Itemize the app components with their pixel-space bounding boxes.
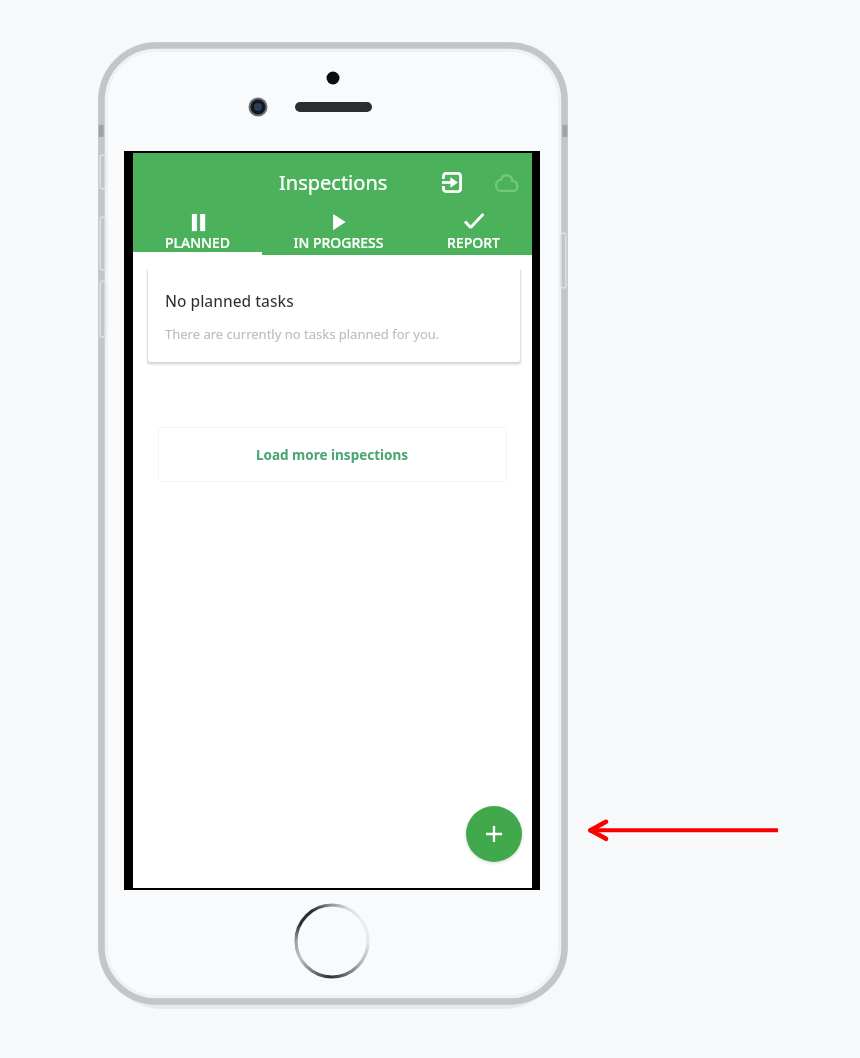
staticText: Load more inspections <box>256 446 409 464</box>
button[interactable]: IN PROGRESS <box>262 205 414 255</box>
button[interactable]: Add inspection <box>466 806 522 862</box>
button[interactable]: REPORT <box>414 205 532 255</box>
button[interactable]: Load more inspections <box>158 427 507 482</box>
staticText: REPORT <box>447 233 500 252</box>
staticText: PLANNED <box>165 233 230 252</box>
button[interactable]: No planned tasks <box>148 268 520 362</box>
staticText: There are currently no tasks planned for… <box>165 325 440 343</box>
staticText: IN PROGRESS <box>293 233 384 252</box>
button[interactable]: Log in <box>433 159 471 205</box>
button[interactable]: PLANNED <box>133 205 262 255</box>
staticText: Inspections <box>279 169 388 196</box>
button[interactable]: Sync to cloud <box>487 159 525 205</box>
staticText: No planned tasks <box>165 290 294 311</box>
